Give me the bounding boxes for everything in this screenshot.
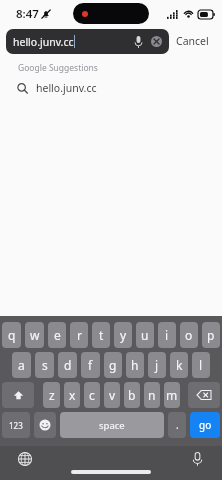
button[interactable]: Delete [188, 382, 220, 408]
staticText: a [18, 357, 25, 373]
button[interactable]: n [144, 382, 160, 408]
button[interactable]: q [2, 322, 21, 348]
button[interactable]: hello.junv.cc [6, 29, 169, 54]
staticText: u [141, 327, 149, 343]
button[interactable]: j [148, 352, 166, 378]
staticText: l [199, 357, 203, 373]
staticText: f [88, 357, 93, 373]
staticText: r [77, 327, 82, 343]
button[interactable]: hello.junv.cc [0, 77, 222, 99]
button[interactable]: m [164, 382, 180, 408]
staticText: n [148, 387, 156, 403]
button[interactable]: p [202, 322, 220, 348]
staticText: c [89, 387, 95, 403]
button[interactable]: d [58, 352, 77, 378]
staticText: Cancel [176, 34, 209, 48]
button[interactable]: Cancel [169, 31, 216, 51]
staticText: w [30, 327, 40, 343]
button[interactable]: b [124, 382, 140, 408]
button[interactable]: a [12, 352, 31, 378]
staticText: k [176, 357, 183, 373]
button[interactable]: space [60, 412, 164, 438]
button[interactable]: u [136, 322, 154, 348]
staticText: d [64, 357, 72, 373]
button[interactable]: Clear text [150, 35, 163, 48]
button[interactable]: go [190, 412, 220, 438]
staticText: b [128, 387, 136, 403]
staticText: hello.junv.cc [13, 35, 74, 49]
staticText: m [166, 387, 178, 403]
staticText: Google Suggestions [18, 62, 98, 74]
button[interactable]: e [48, 322, 66, 348]
staticText: 123 [9, 420, 23, 431]
button[interactable]: i [158, 322, 176, 348]
button[interactable]: y [114, 322, 132, 348]
staticText: o [185, 327, 193, 343]
staticText: q [8, 327, 16, 343]
button[interactable]: f [81, 352, 100, 378]
staticText: s [42, 357, 48, 373]
staticText: p [207, 327, 215, 343]
button[interactable]: Voice search [131, 35, 145, 49]
staticText: h [131, 357, 139, 373]
button[interactable]: c [84, 382, 100, 408]
staticText: j [155, 357, 159, 373]
button[interactable]: k [170, 352, 188, 378]
staticText: go [199, 418, 212, 432]
button[interactable]: Switch keyboard language [14, 448, 36, 470]
staticText: t [99, 327, 104, 343]
button[interactable]: v [104, 382, 120, 408]
staticText: . [176, 418, 179, 432]
button[interactable]: Emoji [34, 412, 56, 438]
button[interactable]: w [25, 322, 44, 348]
button[interactable]: s [35, 352, 54, 378]
button[interactable]: o [180, 322, 198, 348]
staticText: space [99, 419, 125, 432]
staticText: 8:47 [16, 6, 39, 22]
staticText: x [69, 387, 76, 403]
staticText: hello.junv.cc [36, 81, 97, 95]
staticText: z [49, 387, 55, 403]
button[interactable]: r [70, 322, 88, 348]
button[interactable]: Shift [2, 382, 34, 408]
button[interactable]: g [104, 352, 122, 378]
button[interactable]: 123 [2, 412, 30, 438]
button[interactable]: z [43, 382, 60, 408]
staticText: v [109, 387, 116, 403]
button[interactable]: Dictation [186, 448, 208, 470]
button[interactable]: h [126, 352, 144, 378]
button[interactable]: t [92, 322, 110, 348]
staticText: g [109, 357, 117, 373]
staticText: i [165, 327, 169, 343]
staticText: e [54, 327, 61, 343]
button[interactable]: . [168, 412, 186, 438]
button[interactable]: l [192, 352, 210, 378]
button[interactable]: x [64, 382, 80, 408]
staticText: y [120, 327, 127, 343]
